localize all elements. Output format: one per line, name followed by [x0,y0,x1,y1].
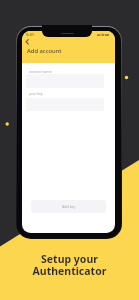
staticText: account name [29,69,52,74]
button[interactable]: Back [23,37,33,47]
button[interactable]: Add account [27,47,62,55]
staticText: Add key [62,204,76,209]
staticText: your key [29,91,43,96]
staticText: Setup your Authenticator [0,252,139,278]
staticText: 9:41 [26,32,34,37]
button[interactable]: Add key [31,200,106,213]
